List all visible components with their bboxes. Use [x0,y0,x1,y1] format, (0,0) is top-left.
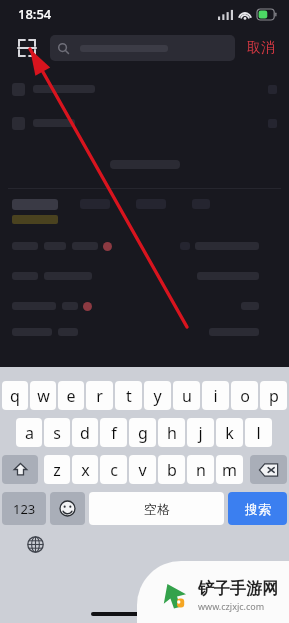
button[interactable]: v [129,455,156,484]
button[interactable]: r [86,381,113,410]
staticText: d [80,422,90,444]
button[interactable]: z [44,455,70,484]
button[interactable]: a [16,418,42,447]
button[interactable]: t [115,381,142,410]
button[interactable]: Delete [250,455,287,484]
staticText: q [10,385,20,407]
staticText: m [222,459,237,481]
button[interactable] [12,72,277,106]
button[interactable]: x [72,455,98,484]
staticText: t [126,385,132,407]
button[interactable] [12,270,277,282]
button[interactable]: d [72,418,98,447]
button[interactable]: k [216,418,243,447]
button[interactable] [12,106,277,140]
staticText: 18:54 [18,5,52,23]
button[interactable]: n [187,455,214,484]
button[interactable]: f [100,418,127,447]
staticText: p [269,385,279,407]
button[interactable]: 搜索 [228,492,287,525]
button[interactable]: m [216,455,243,484]
button[interactable] [12,240,277,252]
staticText: z [53,459,61,481]
button[interactable]: g [129,418,156,447]
button[interactable]: l [245,418,272,447]
staticText: s [53,422,61,444]
button[interactable]: 空格 [89,492,224,525]
staticText: 搜索 [245,501,271,517]
button[interactable]: i [202,381,229,410]
staticText: r [96,385,103,407]
button[interactable]: y [144,381,171,410]
button[interactable]: q [2,381,28,410]
staticText: 空格 [144,501,170,517]
staticText: 铲子手游网 [198,579,278,599]
button[interactable]: Switch keyboard language [22,531,48,557]
button[interactable]: o [231,381,258,410]
button[interactable]: w [30,381,56,410]
button[interactable]: Emoji [50,492,85,525]
staticText: g [138,422,148,444]
button[interactable] [12,199,58,224]
button[interactable]: u [173,381,200,410]
button[interactable]: Scan QR code [10,31,44,65]
staticText: j [198,422,203,444]
staticText: 123 [13,500,36,518]
staticText: h [167,422,177,444]
staticText: 取消 [247,39,275,57]
staticText: x [81,459,90,481]
button[interactable]: 取消 [243,35,279,61]
button[interactable]: c [100,455,127,484]
staticText: y [153,385,162,407]
button[interactable]: e [58,381,84,410]
staticText: k [225,422,234,444]
staticText: www.czjxjc.com [198,600,265,612]
staticText: w [37,385,50,407]
button[interactable] [50,35,235,61]
staticText: v [138,459,147,481]
staticText: l [256,422,261,444]
staticText: o [240,385,250,407]
button[interactable]: j [187,418,214,447]
button[interactable]: 123 [2,492,46,525]
staticText: u [182,385,192,407]
button[interactable]: s [44,418,70,447]
staticText: n [196,459,206,481]
staticText: e [66,385,76,407]
button[interactable] [12,326,277,338]
button[interactable]: b [158,455,185,484]
button[interactable]: h [158,418,185,447]
staticText: c [110,459,118,481]
button[interactable]: Shift [2,455,38,484]
staticText: b [167,459,177,481]
button[interactable]: p [260,381,287,410]
staticText: f [111,422,117,444]
staticText: a [25,422,34,444]
staticText: i [213,385,218,407]
button[interactable] [12,300,277,312]
